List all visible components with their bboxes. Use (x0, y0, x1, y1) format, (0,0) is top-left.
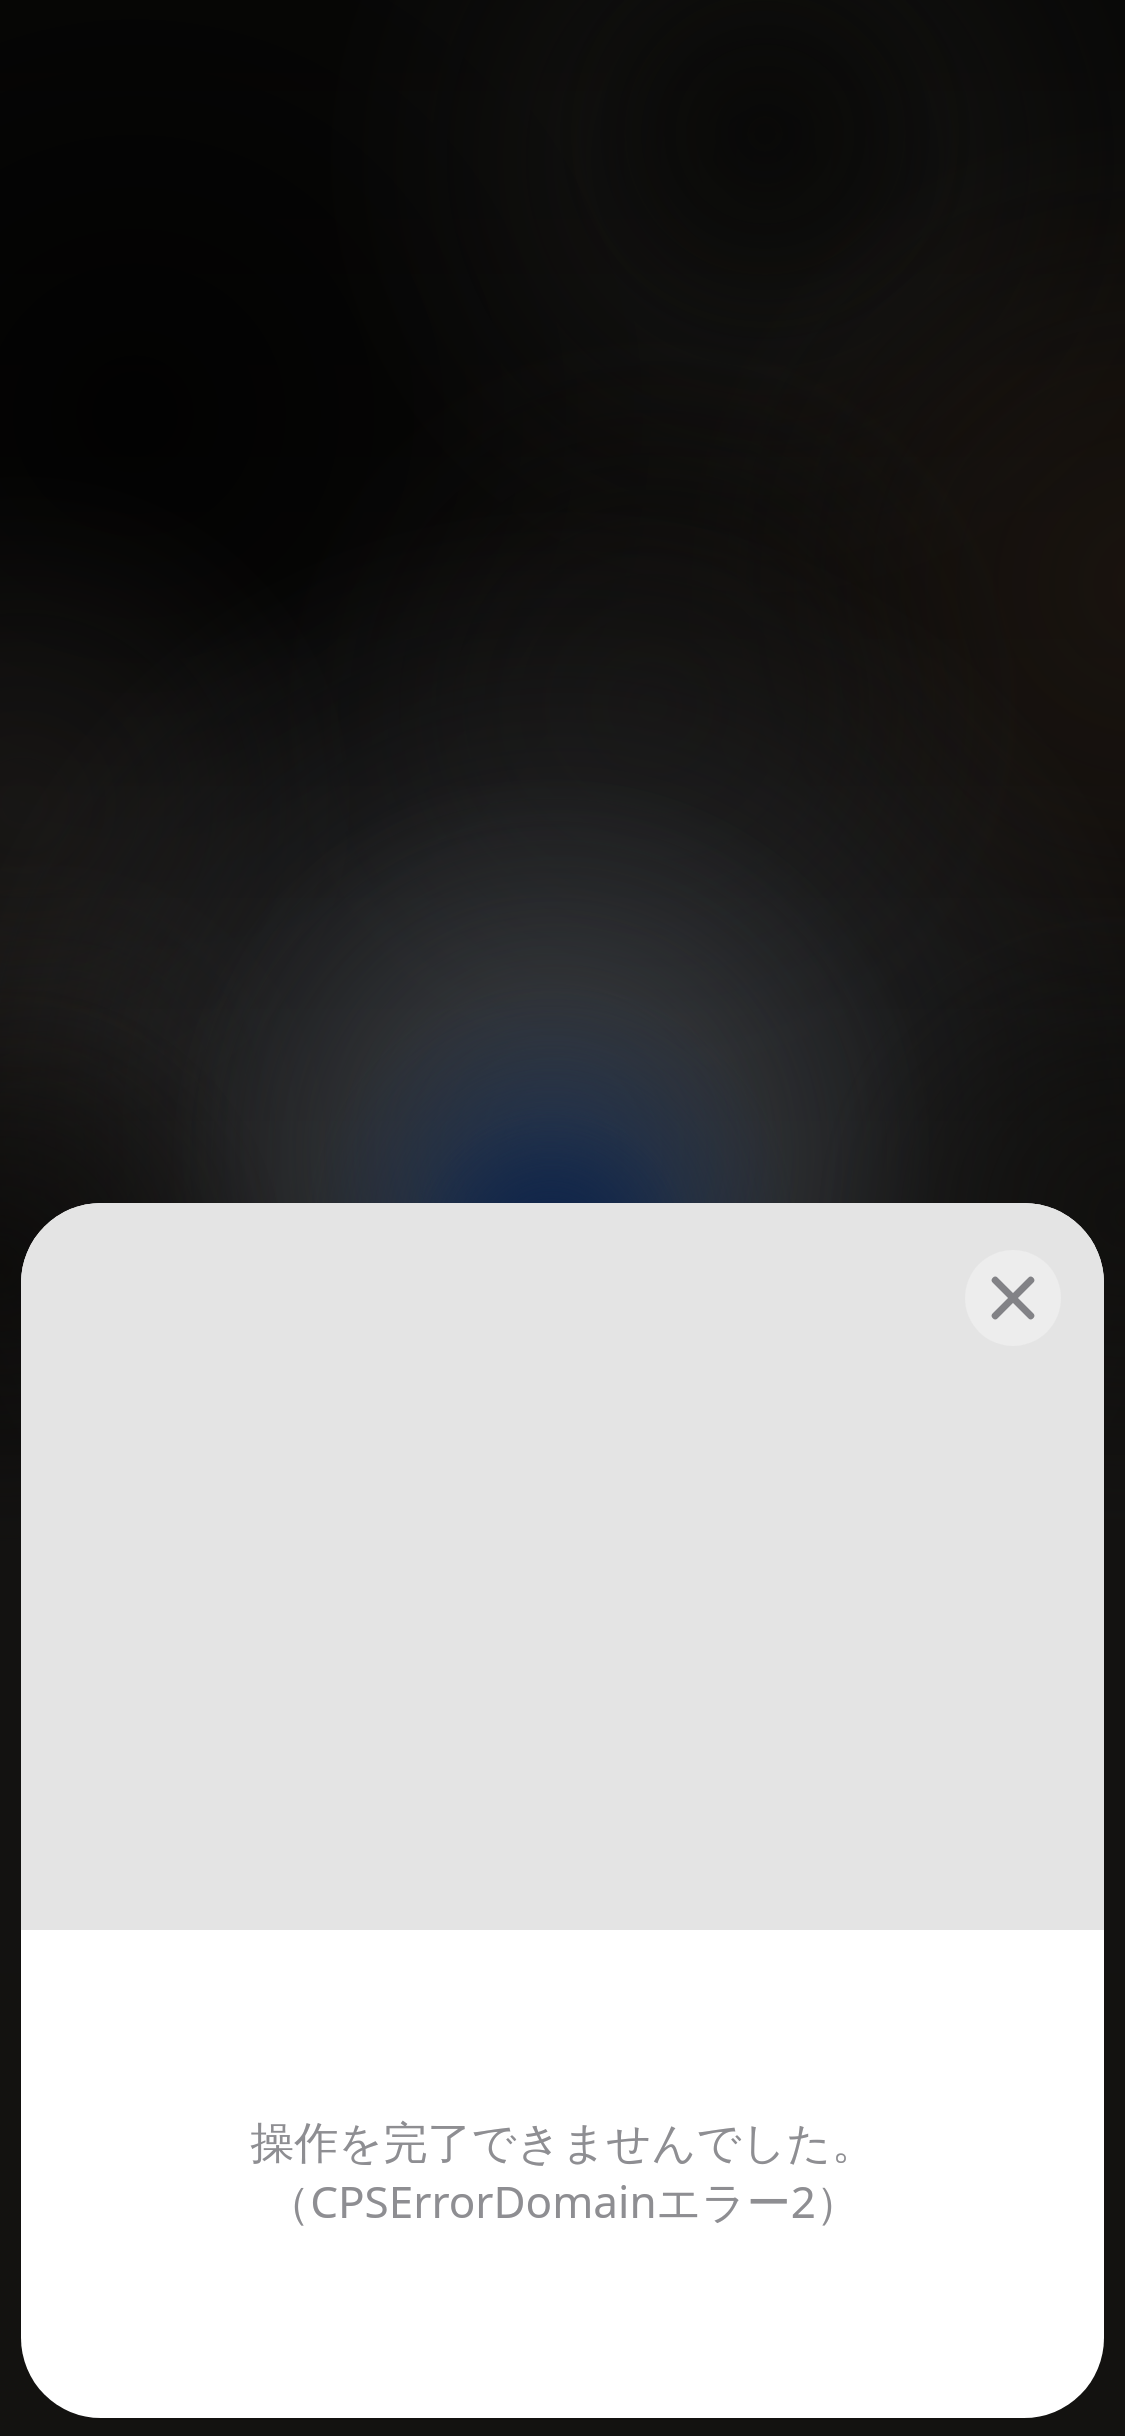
staticText: （CPSErrorDomainエラー2） (266, 2171, 860, 2231)
staticText: 操作を完了できませんでした。 (250, 2116, 876, 2171)
button[interactable]: Close (965, 1250, 1061, 1346)
